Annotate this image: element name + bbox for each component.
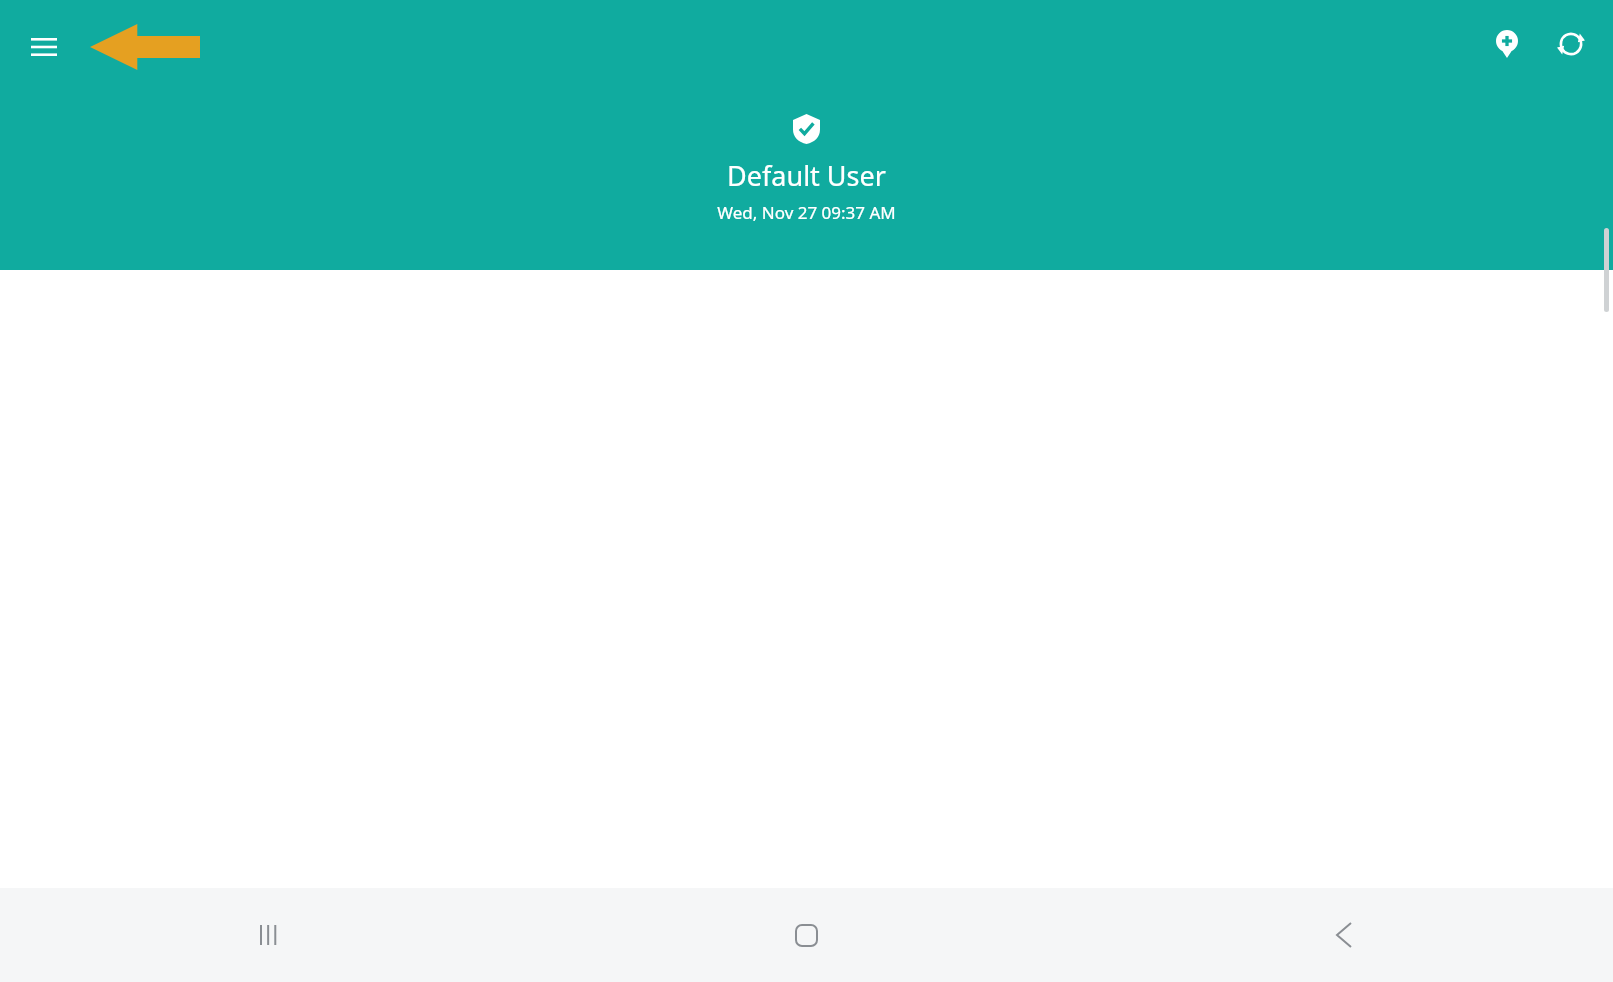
button[interactable]: Recent apps (0, 888, 537, 982)
staticText: Wed, Nov 27 09:37 AM (717, 201, 896, 224)
staticText: Default User (727, 157, 886, 194)
button[interactable]: Back (1075, 888, 1613, 982)
button[interactable]: Home (537, 888, 1075, 982)
button[interactable]: Add location (1475, 12, 1539, 76)
button[interactable]: Refresh (1539, 12, 1603, 76)
button[interactable]: Open navigation menu (14, 17, 74, 77)
